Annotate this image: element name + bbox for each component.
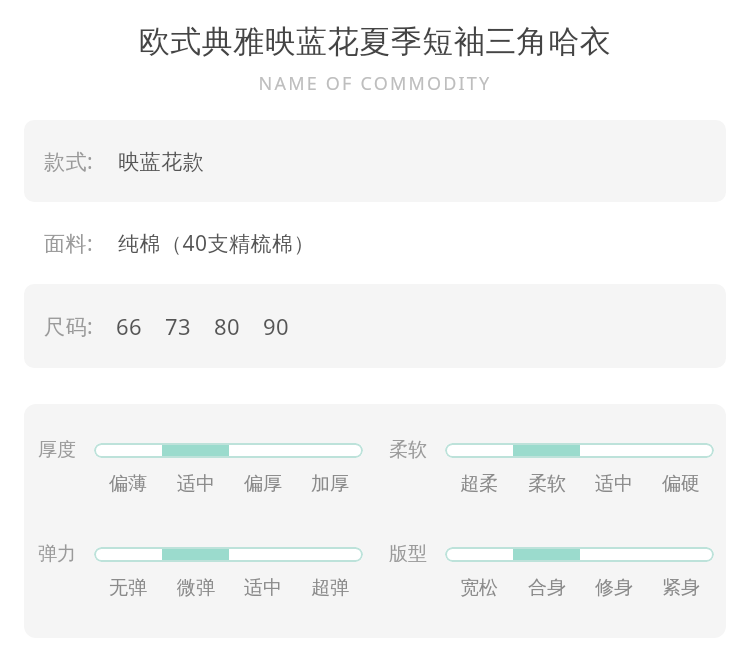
button[interactable]: 无弹: [94, 576, 162, 600]
staticText: 适中: [595, 472, 633, 496]
staticText: 弹力: [38, 542, 84, 566]
staticText: 款式:: [44, 147, 94, 176]
staticText: 厚度: [38, 438, 84, 462]
button[interactable]: 偏硬: [647, 472, 714, 496]
button[interactable]: 面料:: [24, 202, 726, 284]
staticText: 映蓝花款: [118, 149, 204, 175]
button[interactable]: [445, 547, 714, 562]
staticText: 无弹: [109, 576, 147, 600]
button[interactable]: 偏薄: [94, 472, 162, 496]
button[interactable]: 款式:: [24, 120, 726, 202]
staticText: 紧身: [662, 576, 700, 600]
button[interactable]: 90: [263, 311, 290, 341]
button[interactable]: 超柔: [445, 472, 513, 496]
button[interactable]: 适中: [229, 576, 296, 600]
staticText: 合身: [528, 576, 566, 600]
staticText: 尺码:: [44, 312, 94, 341]
button[interactable]: 适中: [162, 472, 229, 496]
button[interactable]: [94, 443, 363, 458]
staticText: 适中: [177, 472, 215, 496]
staticText: 纯棉（40支精梳棉）: [118, 229, 316, 258]
staticText: 面料:: [44, 229, 94, 258]
button[interactable]: 66: [116, 311, 143, 341]
staticText: 偏硬: [662, 472, 700, 496]
button[interactable]: [445, 443, 714, 458]
staticText: 宽松: [460, 576, 498, 600]
button[interactable]: 80: [214, 311, 241, 341]
staticText: 超弹: [311, 576, 349, 600]
button[interactable]: 适中: [580, 472, 647, 496]
button[interactable]: 尺码:: [24, 284, 726, 368]
button[interactable]: 微弹: [162, 576, 229, 600]
staticText: 加厚: [311, 472, 349, 496]
staticText: NAME OF COMMODITY: [0, 71, 750, 96]
button[interactable]: [94, 547, 363, 562]
staticText: 柔软: [389, 438, 435, 462]
button[interactable]: 73: [165, 311, 192, 341]
staticText: 微弹: [177, 576, 215, 600]
button[interactable]: 超弹: [296, 576, 363, 600]
staticText: 偏薄: [109, 472, 147, 496]
button[interactable]: 柔软: [513, 472, 580, 496]
staticText: 版型: [389, 542, 435, 566]
staticText: 欧式典雅映蓝花夏季短袖三角哈衣: [0, 22, 750, 61]
button[interactable]: 合身: [513, 576, 580, 600]
button[interactable]: 偏厚: [229, 472, 296, 496]
staticText: 柔软: [528, 472, 566, 496]
staticText: 修身: [595, 576, 633, 600]
staticText: 适中: [244, 576, 282, 600]
button[interactable]: 修身: [580, 576, 647, 600]
staticText: 超柔: [460, 472, 498, 496]
staticText: 偏厚: [244, 472, 282, 496]
button[interactable]: 宽松: [445, 576, 513, 600]
button[interactable]: 加厚: [296, 472, 363, 496]
button[interactable]: 紧身: [647, 576, 714, 600]
